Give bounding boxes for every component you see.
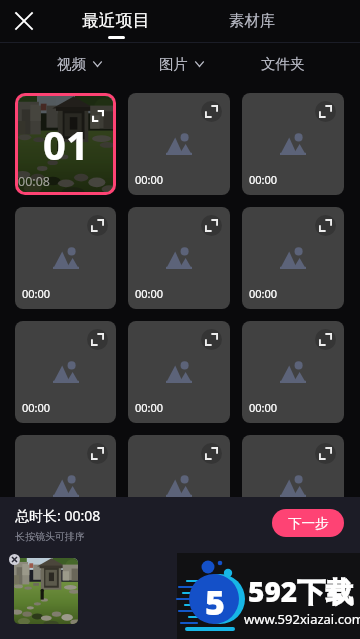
button[interactable]: Preview — [201, 443, 222, 464]
button[interactable]: 图片 — [147, 48, 216, 80]
button[interactable]: Preview — [15, 435, 116, 537]
staticText: 视频 — [57, 55, 87, 73]
staticText: 素材库 — [229, 11, 276, 31]
button[interactable]: Preview — [315, 329, 336, 350]
staticText: 00:00 — [249, 286, 278, 301]
button[interactable]: 素材库 — [212, 11, 292, 41]
staticText: 最近项目 — [82, 10, 150, 31]
staticText: 01 — [43, 117, 89, 171]
staticText: 00:00 — [135, 286, 164, 301]
button[interactable]: Preview — [242, 435, 344, 537]
staticText: 00:08 — [18, 173, 50, 190]
button[interactable]: Preview — [128, 93, 230, 195]
staticText: 00:00 — [135, 400, 164, 415]
button[interactable]: Preview — [242, 93, 344, 195]
staticText: 00:00 — [135, 172, 164, 187]
button[interactable]: Preview — [315, 215, 336, 236]
button[interactable]: Preview — [201, 329, 222, 350]
staticText: 592下载 — [248, 572, 354, 610]
button[interactable]: Preview — [242, 207, 344, 309]
button[interactable]: Preview — [242, 321, 344, 423]
staticText: 00:00 — [22, 400, 51, 415]
button[interactable]: Remove — [9, 554, 20, 565]
button[interactable]: Preview — [15, 207, 116, 309]
staticText: 00:00 — [249, 514, 278, 529]
staticText: 文件夹 — [261, 55, 305, 73]
button[interactable]: Preview — [201, 215, 222, 236]
staticText: 00:00 — [22, 514, 51, 529]
button[interactable]: Preview — [87, 443, 108, 464]
staticText: 5 — [205, 579, 225, 625]
button[interactable]: Preview — [90, 108, 105, 123]
staticText: www.592xiazai.com — [244, 610, 360, 628]
staticText: 图片 — [159, 55, 189, 73]
staticText: 长按镜头可排序 — [15, 530, 85, 543]
button[interactable]: Preview — [87, 215, 108, 236]
staticText: 下一步 — [288, 515, 329, 532]
button[interactable]: Preview — [315, 101, 336, 122]
staticText: 总时长: 00:08 — [15, 506, 101, 525]
staticText: 00:00 — [22, 286, 51, 301]
button[interactable]: Preview — [315, 443, 336, 464]
button[interactable]: 文件夹 — [249, 48, 317, 80]
button[interactable]: Preview — [128, 321, 230, 423]
button[interactable] — [14, 558, 78, 624]
button[interactable]: 视频 — [45, 48, 114, 80]
button[interactable]: Close — [10, 7, 38, 35]
button[interactable]: Preview — [15, 321, 116, 423]
staticText: 00:00 — [249, 400, 278, 415]
button[interactable]: Preview — [201, 101, 222, 122]
button[interactable]: 下一步 — [272, 509, 344, 537]
staticText: 00:00 — [249, 172, 278, 187]
button[interactable]: Preview — [128, 435, 230, 537]
button[interactable]: Preview — [87, 329, 108, 350]
button[interactable]: 最近项目 — [76, 10, 156, 46]
button[interactable]: 01 — [15, 93, 116, 195]
button[interactable]: Preview — [128, 207, 230, 309]
